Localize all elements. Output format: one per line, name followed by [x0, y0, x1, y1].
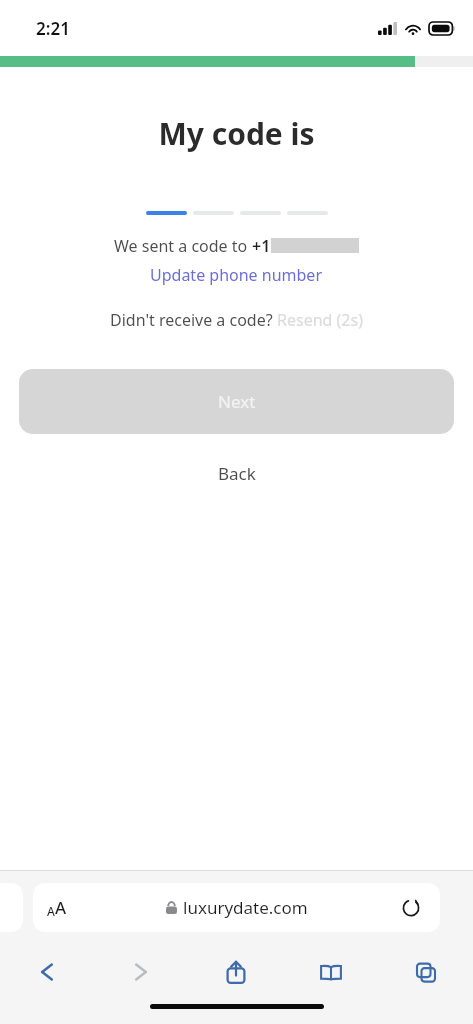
- button[interactable]: Back: [0, 946, 94, 998]
- button[interactable]: luxurydate.com: [33, 883, 440, 932]
- button[interactable]: Share: [188, 946, 283, 998]
- button[interactable]: Page settings: [47, 896, 67, 919]
- staticText: +1: [252, 235, 271, 257]
- button[interactable]: Update phone number: [0, 264, 473, 286]
- staticText: A: [47, 903, 55, 919]
- staticText: My code is: [0, 113, 473, 154]
- staticText: Resend (2s): [277, 309, 363, 331]
- button[interactable]: Reload: [398, 895, 424, 921]
- staticText: A: [55, 896, 67, 919]
- staticText: Back: [218, 462, 256, 485]
- button[interactable]: Bookmarks: [283, 946, 378, 998]
- staticText: Next: [218, 390, 256, 413]
- button[interactable]: Next: [19, 369, 454, 434]
- button[interactable]: Forward: [94, 946, 188, 998]
- staticText: luxurydate.com: [183, 896, 308, 919]
- staticText: 2:21: [36, 17, 70, 40]
- button[interactable]: Resend (2s): [277, 309, 363, 331]
- staticText: Didn't receive a code?: [110, 309, 277, 331]
- button[interactable]: Back: [0, 462, 473, 485]
- staticText: Update phone number: [150, 264, 323, 286]
- button[interactable]: Tabs: [378, 946, 473, 998]
- staticText: We sent a code to: [114, 235, 252, 257]
